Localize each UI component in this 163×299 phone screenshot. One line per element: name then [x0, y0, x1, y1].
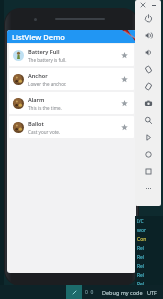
staticText: This is the time. — [28, 105, 62, 111]
button[interactable]: Favourite — [118, 49, 130, 61]
staticText: > — [137, 292, 140, 299]
staticText: Con — [137, 236, 147, 243]
staticText: 0 0 — [85, 289, 94, 296]
button[interactable]: Power — [135, 10, 161, 27]
staticText: Battery Full — [28, 48, 60, 56]
button[interactable]: Volume down — [135, 44, 161, 61]
button[interactable]: Anchor — [9, 68, 134, 90]
staticText: Rel — [137, 245, 145, 252]
button[interactable]: Debug my code — [102, 289, 143, 296]
staticText: Anchor — [28, 72, 48, 80]
staticText: Rel — [137, 254, 145, 261]
button[interactable]: Minimise — [150, 1, 158, 9]
button[interactable]: Zoom — [135, 112, 161, 129]
button[interactable]: Back — [135, 129, 161, 146]
staticText: The battery is full. — [28, 57, 67, 63]
button[interactable]: Home — [135, 146, 161, 163]
button[interactable]: Favourite — [118, 73, 130, 85]
button[interactable]: Rotate right — [135, 78, 161, 95]
button[interactable]: Alarm — [9, 92, 134, 114]
button[interactable]: Run — [66, 285, 82, 299]
staticText: Rel — [137, 272, 145, 279]
staticText: Ballot — [28, 120, 44, 128]
staticText: Rel — [137, 263, 145, 270]
staticText: UTF — [147, 289, 157, 296]
button[interactable]: Close — [139, 1, 147, 9]
staticText: Cast your vote. — [28, 129, 61, 135]
staticText: Rel — [137, 281, 145, 288]
button[interactable]: Screenshot — [135, 95, 161, 112]
button[interactable]: Battery Full — [9, 44, 134, 66]
button[interactable]: Favourite — [118, 121, 130, 133]
staticText: wor — [137, 227, 147, 234]
button[interactable]: More — [135, 180, 161, 197]
staticText: Alarm — [28, 96, 45, 104]
button[interactable]: Ballot — [9, 116, 134, 138]
button[interactable]: Favourite — [118, 97, 130, 109]
staticText: I/C — [137, 218, 144, 225]
staticText: ListView Demo — [12, 32, 65, 42]
button[interactable]: Overview — [135, 163, 161, 180]
button[interactable]: Rotate left — [135, 61, 161, 78]
button[interactable]: Volume up — [135, 27, 161, 44]
staticText: Lower the anchor. — [28, 81, 67, 87]
